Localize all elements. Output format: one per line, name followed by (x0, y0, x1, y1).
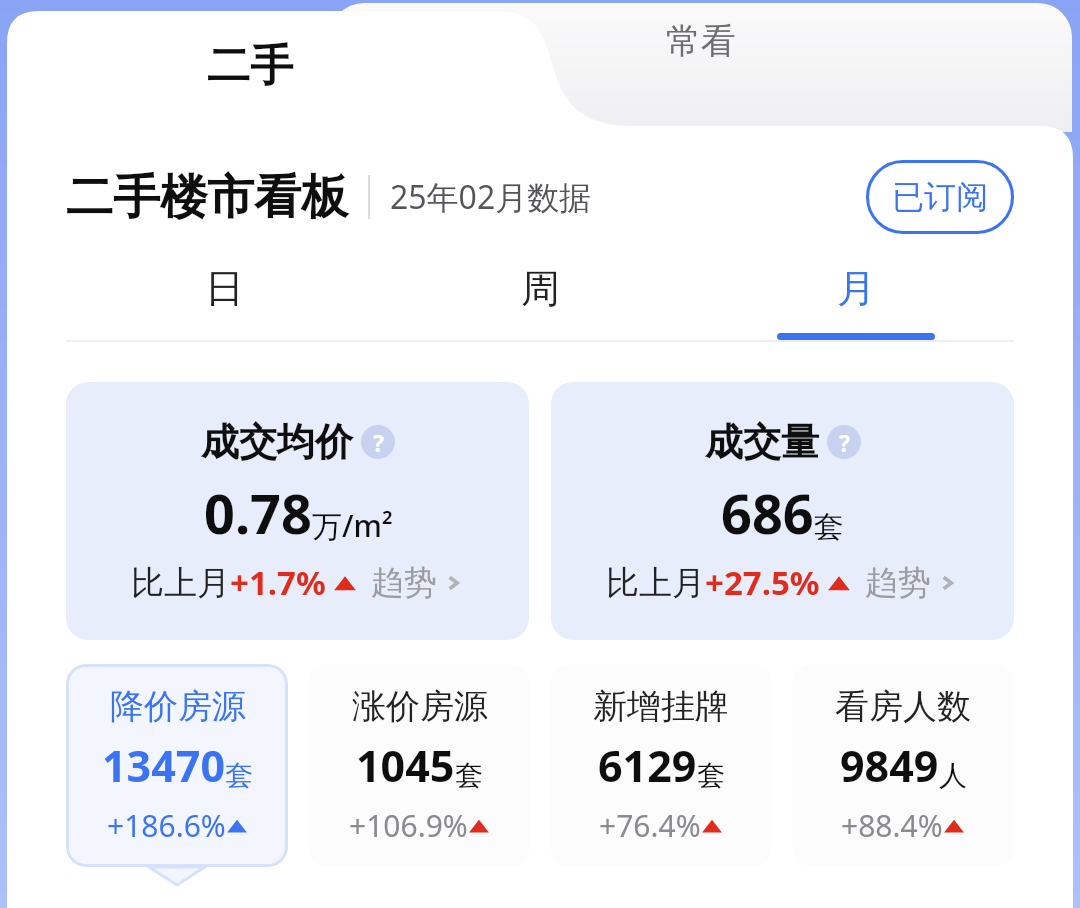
staticText: 6129 (598, 736, 697, 795)
button[interactable]: 说明 (361, 425, 395, 459)
staticText: 月 (837, 264, 876, 313)
button[interactable]: 看房人数 (792, 664, 1014, 867)
button[interactable]: 涨价房源 (308, 664, 530, 867)
button[interactable]: 降价房源 (66, 664, 288, 885)
staticText: 趋势 (865, 562, 931, 604)
staticText: 人 (939, 758, 967, 793)
staticText: +76.4% (599, 805, 701, 846)
staticText: +88.4% (841, 805, 943, 846)
staticText: 成交量 (705, 418, 819, 466)
staticText: 趋势 (371, 562, 437, 604)
staticText: 比上月 (606, 562, 705, 604)
staticText: 25年02月数据 (390, 175, 592, 219)
staticText: 新增挂牌 (593, 685, 729, 728)
staticText: ? (373, 427, 384, 458)
staticText: 已订阅 (892, 177, 988, 217)
staticText: 9849 (840, 736, 939, 795)
staticText: 周 (521, 264, 560, 313)
staticText: 二手楼市看板 (66, 168, 348, 227)
button[interactable]: 成交量 (551, 382, 1014, 640)
staticText: 套 (225, 758, 253, 793)
button[interactable]: 日 (66, 264, 382, 340)
staticText: 常看 (666, 19, 736, 63)
button[interactable]: 成交均价 (66, 382, 529, 640)
staticText: 686 (721, 476, 814, 550)
button[interactable]: 二手 (0, 0, 500, 126)
staticText: 套 (697, 758, 725, 793)
staticText: 套 (455, 758, 483, 793)
staticText: 套 (814, 508, 844, 546)
staticText: ? (839, 427, 850, 458)
staticText: 万/m² (312, 505, 393, 546)
button[interactable]: 新增挂牌 (550, 664, 772, 867)
button[interactable]: 已订阅 (866, 160, 1014, 234)
staticText: 降价房源 (110, 685, 246, 728)
staticText: 13470 (102, 736, 225, 795)
staticText: 成交均价 (201, 418, 353, 466)
staticText: +27.5% (705, 560, 820, 605)
staticText: +106.9% (349, 805, 468, 846)
staticText: 日 (205, 264, 244, 313)
button[interactable]: 常看 (330, 3, 1072, 132)
staticText: 1045 (356, 736, 455, 795)
staticText: 0.78 (204, 476, 312, 550)
staticText: 涨价房源 (352, 685, 488, 728)
staticText: 比上月 (131, 562, 230, 604)
button[interactable]: 月 (698, 264, 1014, 340)
staticText: 二手 (207, 39, 293, 93)
staticText: +1.7% (230, 560, 326, 605)
button[interactable]: 说明 (827, 425, 861, 459)
staticText: +186.6% (107, 805, 226, 846)
staticText: 看房人数 (835, 685, 971, 728)
button[interactable]: 周 (382, 264, 698, 340)
